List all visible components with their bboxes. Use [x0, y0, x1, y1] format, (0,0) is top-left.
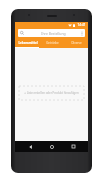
staticText: Lebensmittel — [18, 41, 38, 45]
staticText: + Liste erstellen oder Produkt hinzufüge… — [24, 91, 79, 95]
staticText: 14:41 — [77, 23, 86, 27]
other: More options — [81, 31, 83, 36]
staticText: Ihre Bestellung — [26, 31, 81, 36]
button[interactable]: Back — [23, 141, 37, 152]
button[interactable]: Diverse — [64, 39, 88, 48]
button[interactable]: Home — [45, 141, 59, 152]
staticText: Diverse — [71, 41, 82, 45]
button[interactable]: + Liste erstellen oder Produkt hinzufüge… — [19, 86, 84, 100]
other: Search — [20, 31, 24, 35]
button[interactable]: Search — [18, 29, 85, 37]
button[interactable]: Getränke — [40, 39, 64, 48]
button[interactable]: Recent apps — [66, 141, 80, 152]
button[interactable]: Lebensmittel — [15, 39, 40, 48]
staticText: Getränke — [46, 41, 59, 45]
